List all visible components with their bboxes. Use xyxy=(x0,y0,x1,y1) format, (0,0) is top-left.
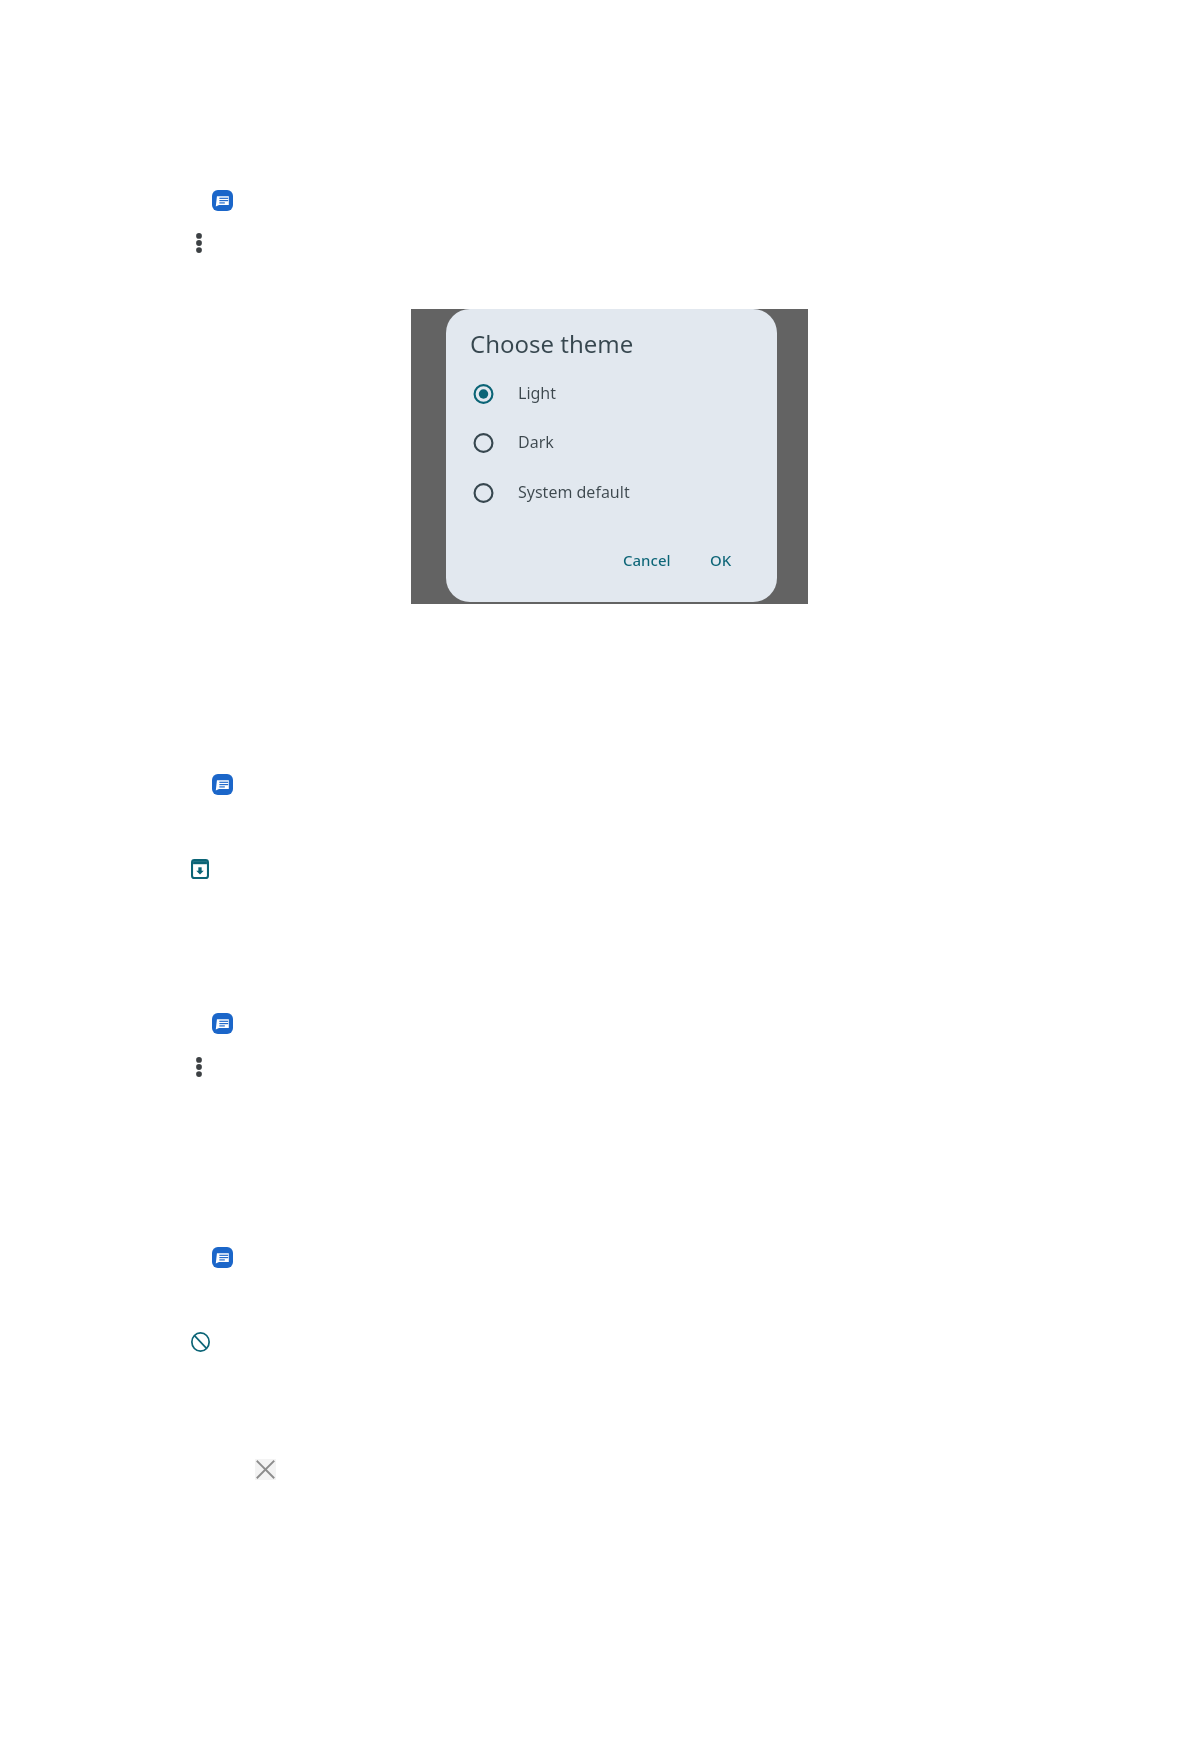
staticText: Light xyxy=(518,382,557,404)
staticText: Cancel xyxy=(623,550,671,570)
button[interactable]: Block xyxy=(191,1332,210,1352)
staticText: System default xyxy=(518,481,630,503)
button[interactable]: Messages xyxy=(212,774,233,795)
staticText: Choose theme xyxy=(470,327,634,360)
button[interactable]: Messages xyxy=(212,1013,233,1034)
button[interactable]: OK xyxy=(702,545,740,575)
staticText: Dark xyxy=(518,431,554,453)
button[interactable]: Dark xyxy=(473,422,763,462)
button[interactable]: Archive xyxy=(191,859,209,879)
button[interactable]: More options xyxy=(196,233,202,253)
button[interactable]: Light xyxy=(473,373,763,413)
button[interactable]: Close xyxy=(255,1459,276,1480)
button[interactable]: Cancel xyxy=(615,545,679,575)
button[interactable]: Messages xyxy=(212,190,233,211)
button[interactable]: More options xyxy=(196,1057,202,1077)
button[interactable]: Messages xyxy=(212,1247,233,1268)
staticText: OK xyxy=(710,550,732,570)
button[interactable]: System default xyxy=(473,472,763,512)
